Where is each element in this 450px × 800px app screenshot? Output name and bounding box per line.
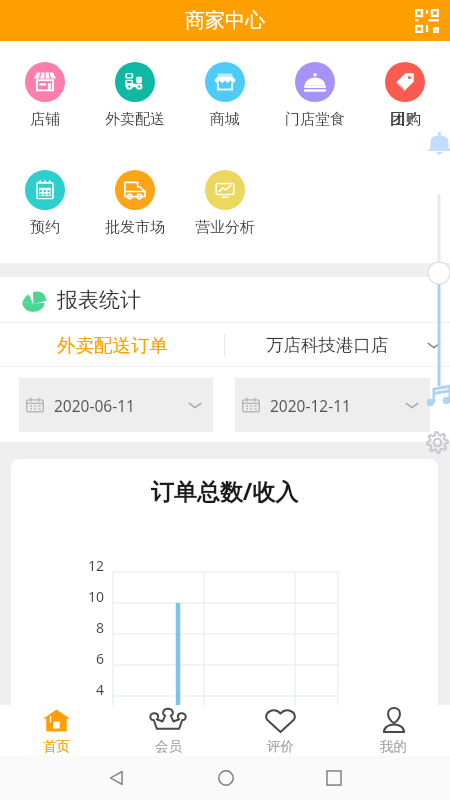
staticText: 10 (11, 587, 104, 606)
staticText: 我的 (380, 738, 407, 755)
button[interactable]: Notifications (409, 116, 450, 167)
staticText: 团购 (391, 110, 421, 129)
button[interactable]: 会员 (112, 705, 224, 756)
button[interactable]: 万店科技港口店 (225, 323, 450, 367)
staticText: 8 (11, 618, 104, 637)
staticText: 会员 (155, 738, 182, 755)
staticText: 12 (11, 556, 104, 575)
staticText: 店铺 (30, 110, 60, 129)
staticText: 订单总数/收入 (11, 475, 438, 506)
button[interactable]: 商城 (180, 62, 270, 129)
staticText: 营业分析 (195, 218, 255, 237)
staticText: 门店堂食 (285, 110, 345, 129)
other: Home (217, 769, 235, 787)
button[interactable]: 我的 (337, 705, 450, 756)
other: Music (426, 385, 450, 410)
other: Recents (326, 770, 342, 786)
staticText: 6 (11, 649, 104, 668)
staticText: 2020-06-11 (54, 395, 135, 416)
button[interactable]: 2020-06-11 (19, 378, 213, 432)
button[interactable]: 预约 (0, 170, 90, 237)
button[interactable]: 批发市场 (90, 170, 180, 237)
button[interactable]: 营业分析 (180, 170, 270, 237)
staticText: 商家中心 (185, 8, 265, 33)
staticText: 商城 (210, 110, 240, 129)
other: Back (108, 769, 126, 787)
other: Settings (425, 430, 450, 455)
button[interactable]: 团购 (360, 62, 450, 129)
button[interactable]: 店铺 (0, 62, 90, 129)
button[interactable]: Scan QR code (411, 5, 443, 37)
button[interactable]: 评价 (224, 705, 337, 756)
staticText: 外卖配送订单 (57, 334, 168, 357)
button[interactable]: 外卖配送 (90, 62, 180, 129)
button[interactable]: 首页 (0, 705, 112, 756)
staticText: 预约 (30, 218, 60, 237)
staticText: 首页 (43, 738, 70, 755)
staticText: 批发市场 (105, 218, 165, 237)
staticText: 2020-12-11 (270, 395, 351, 416)
staticText: 报表统计 (57, 287, 141, 313)
button[interactable]: 外卖配送订单 (0, 323, 224, 367)
staticText: 团购 (390, 110, 420, 129)
staticText: 外卖配送 (105, 110, 165, 129)
staticText: 评价 (267, 738, 294, 755)
button[interactable]: 门店堂食 (270, 62, 360, 129)
staticText: 万店科技港口店 (266, 334, 389, 356)
button[interactable]: 2020-12-11 (235, 378, 430, 432)
staticText: 4 (11, 680, 104, 699)
